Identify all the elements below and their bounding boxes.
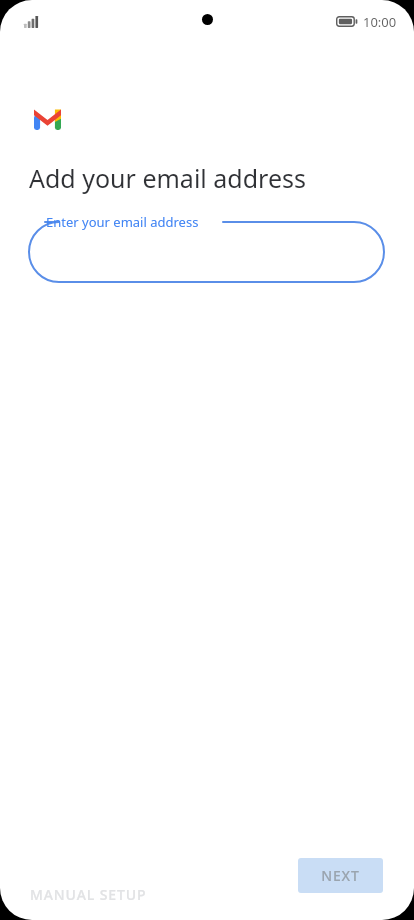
staticText: Enter your email address: [46, 213, 199, 231]
staticText: NEXT: [321, 866, 360, 885]
button[interactable]: Enter your email address: [28, 221, 385, 283]
button[interactable]: NEXT: [298, 858, 383, 893]
staticText: Add your email address: [29, 161, 306, 195]
staticText: MANUAL SETUP: [30, 885, 147, 904]
staticText: 10:00: [363, 13, 397, 31]
button[interactable]: MANUAL SETUP: [0, 877, 177, 912]
